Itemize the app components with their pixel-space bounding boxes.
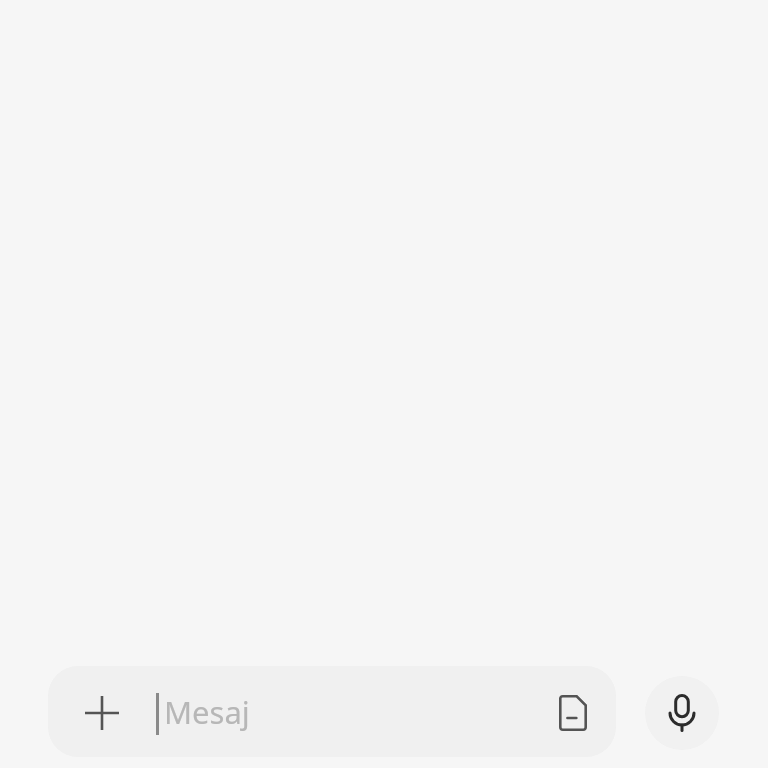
button[interactable]: Attach document <box>549 689 597 737</box>
button[interactable]: Voice message <box>645 676 719 750</box>
staticText: Mesaj <box>164 691 250 733</box>
button[interactable]: Add attachment <box>48 666 616 757</box>
button[interactable]: Add attachment <box>78 689 126 737</box>
